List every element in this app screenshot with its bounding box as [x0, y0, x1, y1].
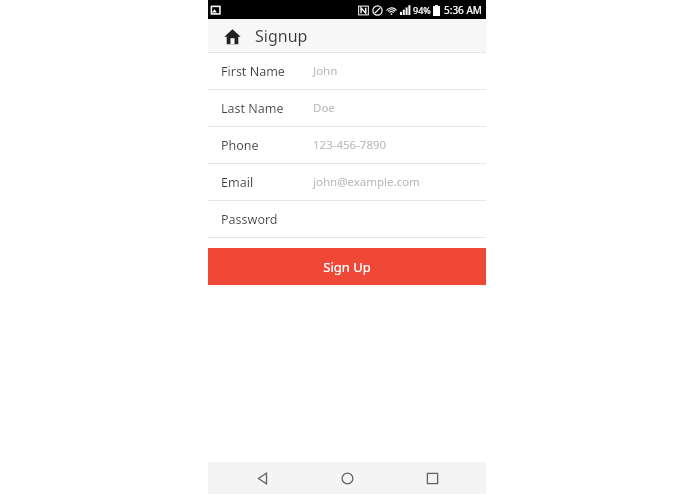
staticText: 123-456-7890 [313, 137, 387, 153]
staticText: Sign Up [323, 258, 371, 276]
button[interactable]: Email [208, 164, 486, 200]
staticText: Signup [255, 25, 308, 47]
staticText: Doe [313, 100, 335, 116]
staticText: Password [221, 211, 278, 228]
button[interactable]: Home [317, 462, 377, 494]
button[interactable]: First Name [208, 53, 486, 89]
button[interactable]: Phone [208, 127, 486, 163]
button[interactable]: Home [219, 23, 245, 49]
staticText: john@example.com [313, 174, 420, 190]
staticText: 5:36 AM [444, 3, 482, 17]
staticText: Last Name [221, 100, 284, 117]
button[interactable]: Recent apps [402, 462, 462, 494]
staticText: Phone [221, 137, 259, 154]
button[interactable]: Sign Up [208, 248, 486, 285]
staticText: 94% [413, 4, 431, 16]
button[interactable]: Last Name [208, 90, 486, 126]
staticText: First Name [221, 63, 285, 80]
staticText: John [313, 63, 338, 79]
staticText: Email [221, 174, 254, 191]
button[interactable]: Password [208, 201, 486, 237]
button[interactable]: Back [233, 462, 293, 494]
